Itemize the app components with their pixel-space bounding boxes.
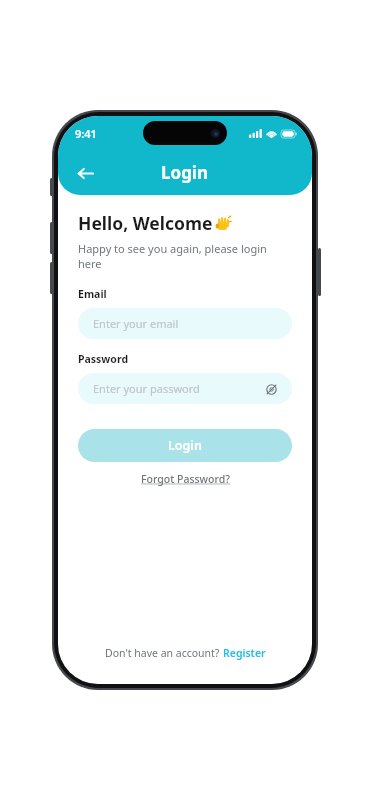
staticText: Email: [78, 287, 107, 301]
button[interactable]: Back: [68, 156, 102, 190]
button[interactable]: Enter your password: [78, 373, 292, 404]
staticText: Login: [168, 437, 202, 454]
staticText: 9:41: [75, 126, 97, 141]
button[interactable]: Forgot Password?: [138, 471, 233, 487]
staticText: Enter your email: [93, 316, 179, 331]
button[interactable]: Enter your email: [78, 308, 292, 339]
staticText: Register: [223, 646, 266, 660]
staticText: Forgot Password?: [141, 472, 230, 486]
button[interactable]: Login: [78, 429, 292, 462]
staticText: Don't have an account?: [105, 646, 223, 660]
button[interactable]: Register: [223, 646, 266, 660]
staticText: Login: [161, 161, 209, 184]
staticText: Password: [78, 352, 129, 366]
staticText: Hello, Welcome: [78, 211, 213, 235]
button[interactable]: Show password: [262, 380, 280, 398]
staticText: Enter your password: [93, 381, 200, 396]
staticText: Happy to see you again, please login her…: [78, 241, 292, 271]
